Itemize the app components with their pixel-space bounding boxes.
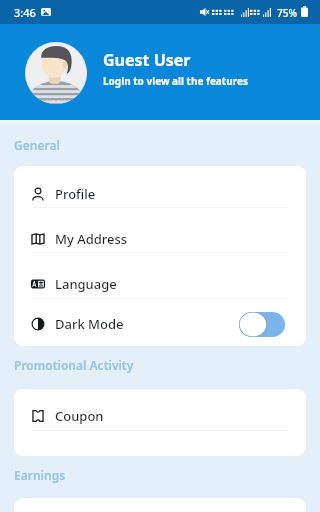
staticText: My Address (55, 230, 128, 248)
staticText: Promotional Activity (14, 357, 134, 373)
button[interactable]: Language (14, 264, 306, 304)
staticText: Coupon (55, 407, 104, 425)
button[interactable]: Profile (14, 174, 306, 214)
staticText: Dark Mode (55, 315, 124, 333)
staticText: Profile (55, 185, 96, 203)
staticText: 75% (277, 6, 297, 20)
button[interactable]: Dark Mode (14, 304, 306, 344)
staticText: Language (55, 275, 117, 293)
staticText: 3:46 (14, 5, 36, 20)
staticText: Earnings (14, 467, 66, 483)
staticText: Guest User (103, 49, 191, 71)
staticText: Login to view all the features (103, 74, 248, 88)
staticText: General (14, 137, 60, 153)
button[interactable]: Toggle dark mode (239, 312, 285, 337)
button[interactable]: My Address (14, 219, 306, 259)
button[interactable]: Coupon (14, 396, 306, 436)
